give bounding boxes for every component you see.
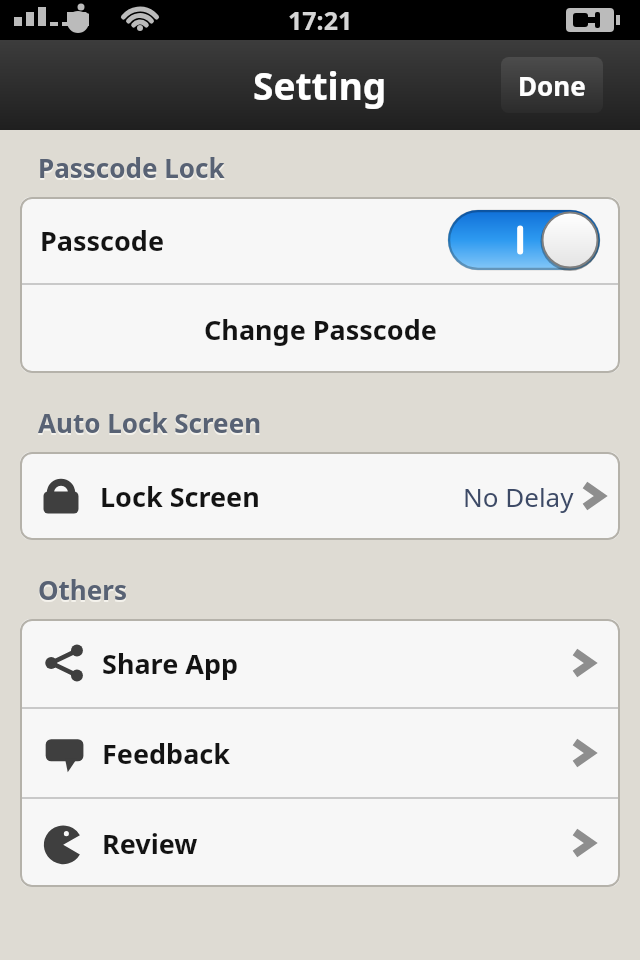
button[interactable]: Feedback <box>20 709 620 797</box>
staticText: Passcode <box>40 222 165 259</box>
staticText: Feedback <box>102 735 231 772</box>
staticText: 17:21 <box>288 3 353 37</box>
other: More <box>582 477 608 515</box>
other: More <box>572 644 598 682</box>
staticText: Change Passcode <box>204 311 437 348</box>
staticText: Auto Lock Screen <box>38 407 262 442</box>
button[interactable]: Lock Screen <box>20 452 620 540</box>
button[interactable]: Change Passcode <box>20 285 620 373</box>
button[interactable]: Share App <box>20 619 620 707</box>
staticText: Share App <box>102 645 239 682</box>
staticText: Passcode Lock <box>38 152 225 187</box>
other: More <box>572 734 598 772</box>
staticText: No Delay <box>463 479 574 514</box>
staticText: Done <box>518 68 586 103</box>
button[interactable]: Done <box>501 57 603 113</box>
staticText: Auto Lock Screen <box>38 405 262 440</box>
staticText: Lock Screen <box>100 478 260 515</box>
other: More <box>572 824 598 862</box>
staticText: Setting <box>253 60 387 110</box>
staticText: Others <box>38 572 127 607</box>
staticText: Others <box>38 574 127 609</box>
staticText: Passcode Lock <box>38 150 225 185</box>
button[interactable]: Passcode on <box>448 210 600 270</box>
button[interactable]: Passcode <box>20 197 620 283</box>
button[interactable]: Review <box>20 799 620 887</box>
staticText: Review <box>102 825 198 862</box>
